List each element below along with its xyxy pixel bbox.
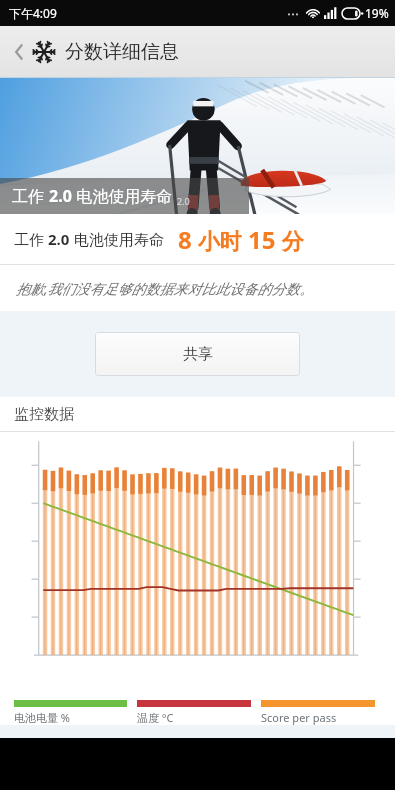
- staticText: 下午4:09: [9, 5, 57, 21]
- button[interactable]: 共享: [95, 332, 300, 376]
- staticText: 电池使用寿命: [70, 229, 164, 249]
- staticText: 小时: [192, 225, 248, 255]
- staticText: 19%: [365, 5, 389, 21]
- staticText: Score per pass: [261, 710, 337, 725]
- staticText: 电池电量 %: [14, 710, 71, 725]
- staticText: 分: [276, 225, 304, 255]
- staticText: 温度 °C: [137, 710, 174, 725]
- staticText: 8: [178, 223, 192, 256]
- staticText: 工作: [12, 185, 49, 207]
- staticText: 15: [248, 223, 276, 256]
- staticText: 工作: [14, 229, 48, 249]
- staticText: 抱歉,我们没有足够的数据来对比此设备的分数。: [16, 279, 314, 298]
- staticText: 2.0: [49, 185, 72, 207]
- staticText: 2.0: [177, 195, 190, 207]
- button[interactable]: Back: [6, 32, 32, 72]
- staticText: 共享: [183, 345, 213, 364]
- staticText: 电池使用寿命: [72, 185, 177, 207]
- staticText: 监控数据: [14, 405, 74, 424]
- staticText: 2.0: [48, 229, 70, 249]
- staticText: 分数详细信息: [65, 40, 179, 64]
